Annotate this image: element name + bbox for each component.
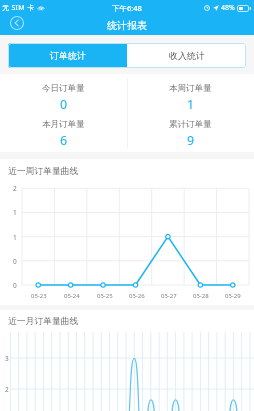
staticText: 0 xyxy=(13,281,17,290)
staticText: 05-25 xyxy=(97,292,113,300)
staticText: 05-29 xyxy=(225,292,241,300)
staticText: 累计订单量 xyxy=(169,119,212,130)
staticText: 今日订单量 xyxy=(42,83,85,94)
staticText: 1 xyxy=(13,233,17,242)
button[interactable]: Back xyxy=(9,15,25,31)
staticText: 收入统计 xyxy=(169,50,205,61)
staticText: 本月订单量 xyxy=(42,119,85,130)
staticText: 3 xyxy=(5,354,9,363)
staticText: 订单统计 xyxy=(50,50,86,61)
staticText: 下午6:48 xyxy=(112,3,142,13)
staticText: 05-28 xyxy=(193,292,209,300)
staticText: 6 xyxy=(60,132,68,149)
staticText: 统计报表 xyxy=(107,19,147,32)
staticText: 05-24 xyxy=(64,292,80,300)
staticText: 无 SIM 卡 xyxy=(2,3,35,13)
staticText: 2 xyxy=(13,184,17,193)
staticText: 本周订单量 xyxy=(169,83,212,94)
button[interactable]: 订单统计 xyxy=(8,43,127,68)
staticText: 0 xyxy=(13,257,17,266)
staticText: 05-26 xyxy=(129,292,145,300)
staticText: 0 xyxy=(60,96,68,113)
staticText: 9 xyxy=(187,132,195,149)
staticText: 近一周订单量曲线 xyxy=(8,166,79,177)
staticText: 2 xyxy=(5,385,9,394)
staticText: 05-23 xyxy=(31,292,47,300)
staticText: 05-27 xyxy=(161,292,177,300)
staticText: 1 xyxy=(187,96,195,113)
staticText: 48% xyxy=(221,3,235,13)
staticText: 1 xyxy=(13,208,17,217)
staticText: 近一月订单量曲线 xyxy=(8,316,79,327)
button[interactable]: 收入统计 xyxy=(127,43,246,68)
